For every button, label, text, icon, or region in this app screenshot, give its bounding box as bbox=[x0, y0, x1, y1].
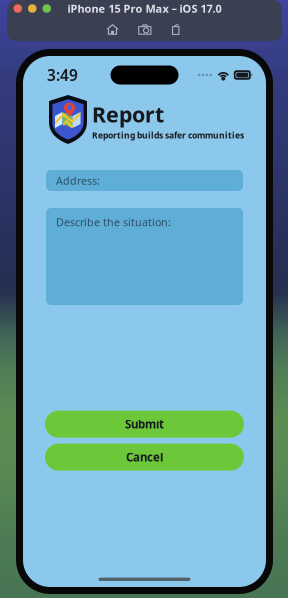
button[interactable]: Home bbox=[96, 24, 128, 35]
button[interactable]: Screenshot bbox=[128, 24, 160, 35]
staticText: Reporting builds safer communities bbox=[92, 129, 244, 141]
staticText: Submit bbox=[125, 416, 164, 432]
staticText: Cancel bbox=[126, 449, 163, 465]
staticText: 3:49 bbox=[47, 65, 78, 85]
button[interactable]: Zoom bbox=[42, 4, 51, 13]
staticText: iPhone 15 Pro Max – iOS 17.0 bbox=[67, 1, 221, 16]
staticText: Report bbox=[92, 100, 164, 128]
button[interactable]: Minimise bbox=[28, 4, 36, 13]
staticText: Address: bbox=[56, 173, 100, 188]
button[interactable]: Rotate bbox=[160, 24, 190, 35]
button[interactable]: Submit bbox=[45, 411, 244, 438]
button[interactable]: Close bbox=[13, 4, 22, 13]
button[interactable]: Cancel bbox=[45, 444, 244, 471]
staticText: Describe the situation: bbox=[56, 215, 171, 229]
